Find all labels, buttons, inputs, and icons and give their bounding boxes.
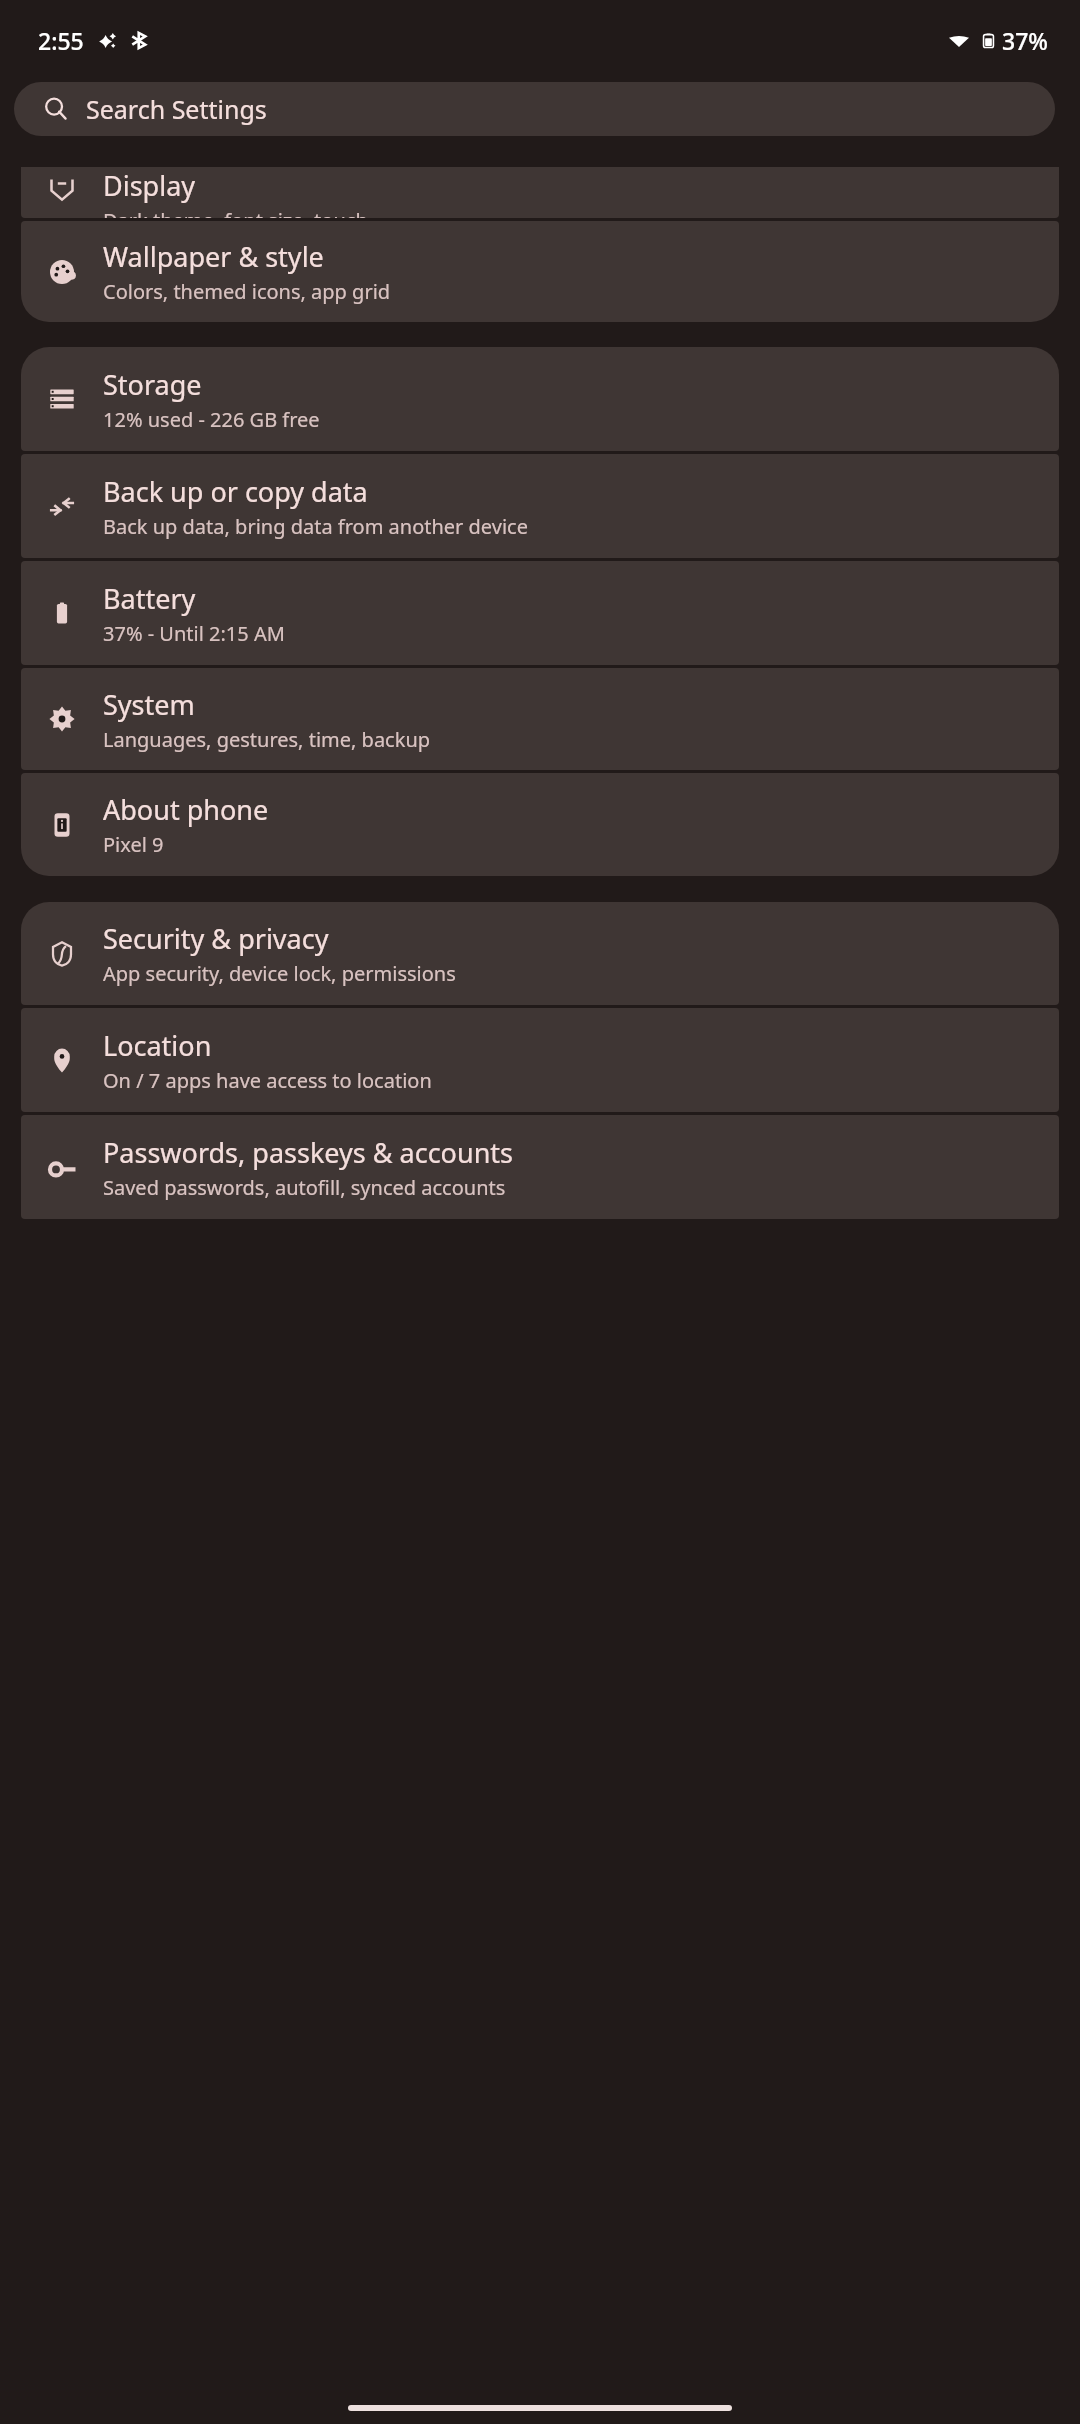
staticText: Pixel 9 (103, 831, 164, 858)
button[interactable]: Security & privacy (21, 902, 1059, 1005)
staticText: System (103, 686, 195, 723)
button[interactable]: Battery (21, 561, 1059, 665)
staticText: Passwords, passkeys & accounts (103, 1134, 513, 1171)
staticText: App security, device lock, permissions (103, 960, 456, 987)
staticText: Dark theme, font size, touch (103, 207, 368, 218)
button[interactable]: Wallpaper & style (21, 221, 1059, 322)
staticText: Display (103, 167, 196, 204)
button[interactable]: About phone (21, 773, 1059, 876)
staticText: Security & privacy (103, 920, 329, 957)
staticText: Battery (103, 580, 196, 617)
staticText: 37% (1002, 25, 1048, 56)
staticText: 12% used - 226 GB free (103, 406, 320, 433)
button[interactable]: Passwords, passkeys & accounts (21, 1115, 1059, 1219)
button[interactable]: Search Settings (14, 82, 1055, 136)
button[interactable]: Back up or copy data (21, 454, 1059, 558)
staticText: 2:55 (38, 25, 84, 56)
staticText: On / 7 apps have access to location (103, 1067, 432, 1094)
button[interactable]: System (21, 668, 1059, 770)
staticText: Location (103, 1027, 212, 1064)
button[interactable]: Storage (21, 347, 1059, 451)
staticText: Back up or copy data (103, 473, 368, 510)
staticText: Saved passwords, autofill, synced accoun… (103, 1174, 506, 1201)
staticText: Colors, themed icons, app grid (103, 278, 391, 305)
staticText: Storage (103, 366, 202, 403)
staticText: Search Settings (86, 92, 267, 126)
staticText: Back up data, bring data from another de… (103, 513, 528, 540)
button[interactable]: Display (21, 167, 1059, 218)
button[interactable]: Location (21, 1008, 1059, 1112)
staticText: About phone (103, 791, 269, 828)
staticText: Languages, gestures, time, backup (103, 726, 431, 753)
staticText: 37% - Until 2:15 AM (103, 620, 285, 647)
staticText: Wallpaper & style (103, 238, 324, 275)
